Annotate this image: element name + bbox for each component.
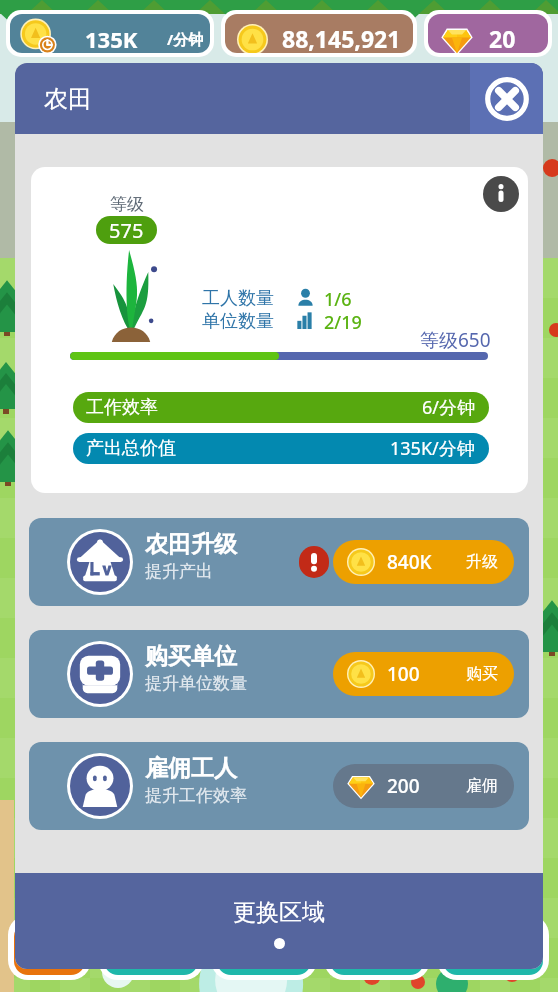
- staticText: 20: [489, 23, 516, 53]
- button[interactable]: 20: [428, 14, 548, 53]
- button[interactable]: 88,145,921: [225, 14, 413, 53]
- staticText: 840K: [387, 549, 432, 575]
- staticText: 575: [109, 217, 144, 244]
- staticText: 单位数量: [202, 310, 274, 333]
- button[interactable]: Close: [470, 63, 543, 134]
- button[interactable]: 购买单位: [29, 630, 529, 718]
- staticText: 200: [387, 773, 420, 799]
- staticText: 6/分钟: [422, 395, 475, 420]
- staticText: /分钟: [167, 29, 204, 49]
- button[interactable]: 产出总价值: [73, 433, 489, 464]
- staticText: 1/6: [324, 287, 352, 312]
- button[interactable]: 工作效率: [73, 392, 489, 423]
- staticText: 购买单位: [145, 642, 237, 671]
- button[interactable]: 840K: [333, 540, 514, 584]
- staticText: 雇佣: [466, 776, 498, 796]
- button[interactable]: Warning: [299, 546, 329, 578]
- staticText: 提升工作效率: [145, 785, 247, 806]
- staticText: 135K/分钟: [390, 436, 475, 461]
- staticText: 135K: [85, 24, 138, 53]
- staticText: 工人数量: [202, 287, 274, 310]
- staticText: 雇佣工人: [145, 754, 237, 783]
- staticText: 等级650: [420, 327, 491, 353]
- staticText: 提升单位数量: [145, 673, 247, 694]
- staticText: 购买: [466, 664, 498, 684]
- button[interactable]: 135K: [10, 14, 210, 53]
- staticText: 等级: [110, 194, 144, 215]
- staticText: 产出总价值: [86, 437, 176, 460]
- button[interactable]: 雇佣工人: [29, 742, 529, 830]
- staticText: 升级: [466, 552, 498, 572]
- staticText: 100: [387, 661, 420, 687]
- staticText: 农田升级: [145, 530, 237, 559]
- staticText: 88,145,921: [282, 23, 401, 53]
- staticText: 更换区域: [233, 898, 325, 927]
- staticText: 提升产出: [145, 561, 213, 582]
- staticText: 工作效率: [86, 396, 158, 419]
- staticText: 2/19: [324, 310, 362, 335]
- button[interactable]: 200: [333, 764, 514, 808]
- button[interactable]: Info: [483, 176, 519, 212]
- staticText: 农田: [44, 84, 92, 114]
- button[interactable]: 100: [333, 652, 514, 696]
- button[interactable]: 农田升级: [29, 518, 529, 606]
